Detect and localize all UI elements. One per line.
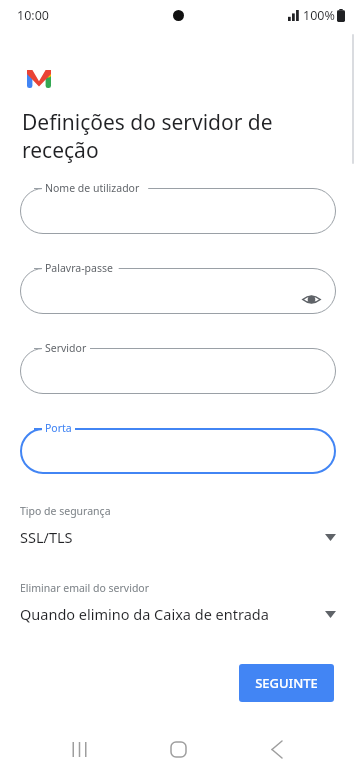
staticText: SSL/TLS [20, 527, 73, 547]
staticText: Servidor [45, 341, 87, 355]
staticText: Quando elimino da Caixa de entrada [20, 604, 269, 624]
staticText: Nome de utilizador [45, 181, 140, 195]
button[interactable]: Tipo de segurança [20, 502, 336, 549]
button[interactable]: Porta [20, 420, 336, 482]
button[interactable]: Retroceder [260, 732, 294, 766]
button[interactable]: SEGUINTE [239, 664, 334, 702]
staticText: 10:00 [17, 7, 49, 24]
button[interactable]: Eliminar email do servidor [20, 579, 336, 626]
button[interactable]: Nome de utilizador [20, 180, 336, 242]
staticText: SEGUINTE [255, 674, 318, 692]
staticText: Eliminar email do servidor [20, 581, 150, 595]
button[interactable]: Mostrar palavra-passe [298, 286, 324, 312]
button[interactable]: Servidor [20, 340, 336, 402]
button[interactable]: Recentes [62, 732, 96, 766]
staticText: Definições do servidor de receção [22, 108, 326, 164]
button[interactable]: Palavra-passe [20, 260, 336, 322]
staticText: Palavra-passe [45, 261, 113, 275]
button[interactable]: Início [161, 732, 195, 766]
staticText: 100% [303, 7, 335, 24]
staticText: Tipo de segurança [20, 504, 111, 518]
staticText: Porta [45, 421, 72, 435]
